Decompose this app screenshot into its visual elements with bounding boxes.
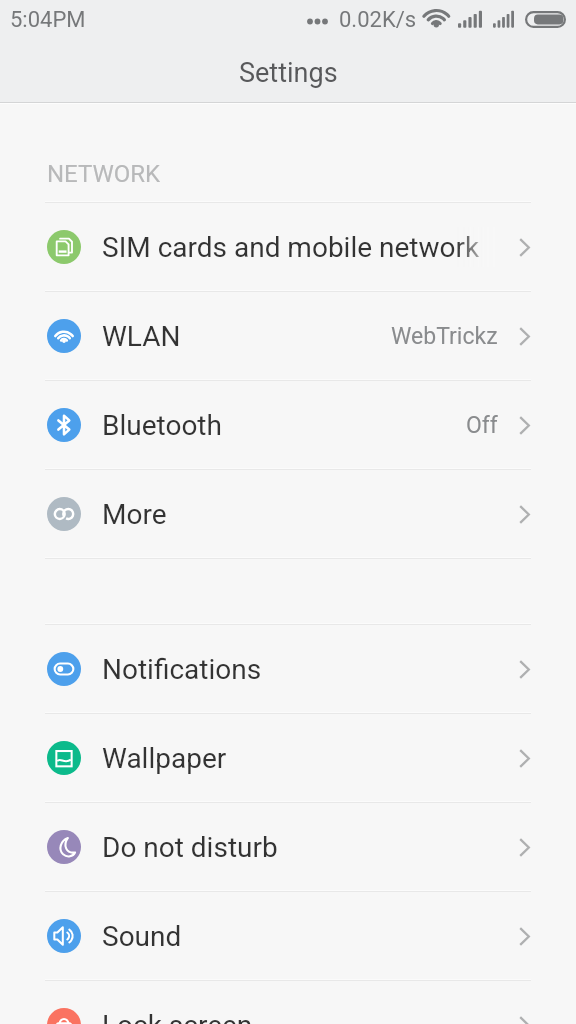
staticText: WebTrickz [391, 323, 498, 350]
staticText: 0.02K/s [339, 7, 417, 33]
staticText: Notifications [102, 653, 262, 686]
staticText: Lock screen [102, 1009, 253, 1024]
staticText: Do not disturb [102, 831, 278, 864]
staticText: WLAN [102, 320, 181, 353]
other: Open WLAN [519, 327, 530, 346]
other: Open SIM cards and mobile network [519, 238, 530, 257]
button[interactable]: Open SIM cards and mobile network [0, 203, 576, 291]
button[interactable]: Open More [0, 470, 576, 558]
staticText: Settings [239, 57, 338, 89]
button[interactable]: Open Sound [0, 892, 576, 980]
staticText: Bluetooth [102, 409, 222, 442]
button[interactable]: Open WLAN [0, 292, 576, 380]
button[interactable]: Open Lock screen [0, 981, 576, 1024]
button[interactable]: Open Notifications [0, 625, 576, 713]
other: Open Do not disturb [519, 838, 530, 857]
staticText: Wallpaper [102, 742, 227, 775]
staticText: Off [466, 412, 498, 439]
other: Open Sound [519, 927, 530, 946]
other: Open More [519, 505, 530, 524]
button[interactable]: Open Wallpaper [0, 714, 576, 802]
staticText: SIM cards and mobile network [102, 231, 480, 264]
staticText: More [102, 498, 167, 531]
staticText: NETWORK [47, 160, 161, 188]
staticText: 5:04PM [10, 7, 86, 33]
staticText: Sound [102, 920, 182, 953]
button[interactable]: Open Do not disturb [0, 803, 576, 891]
other: Open Bluetooth [519, 416, 530, 435]
other: Open Lock screen [519, 1016, 530, 1024]
other: Open Wallpaper [519, 749, 530, 768]
button[interactable]: Open Bluetooth [0, 381, 576, 469]
other: Open Notifications [519, 660, 530, 679]
